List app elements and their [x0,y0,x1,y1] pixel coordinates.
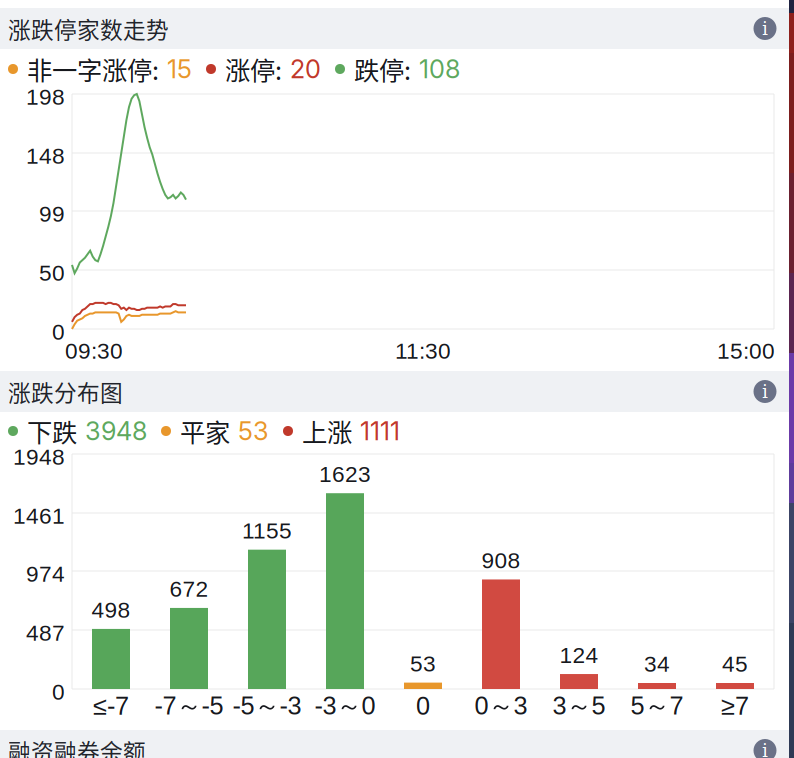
staticText: 0 [416,692,430,720]
staticText: 15 [167,54,192,84]
staticText: 非一字涨停: [27,51,159,87]
staticText: 124 [559,642,598,668]
staticText: 0 [52,679,65,705]
staticText: 908 [481,548,520,573]
button[interactable]: Information [745,371,785,411]
staticText: 0 [52,319,65,345]
staticText: 1623 [319,461,371,487]
staticText: 498 [91,597,130,623]
staticText: 148 [26,143,65,169]
staticText: -3～0 [314,690,375,722]
staticText: 108 [419,54,460,84]
staticText: 0～3 [474,690,527,722]
staticText: 974 [26,561,65,587]
staticText: ≤-7 [93,692,129,720]
staticText: 融资融券余额 [8,734,146,758]
staticText: -5～-3 [232,690,301,722]
staticText: 上涨 [302,413,352,449]
staticText: 53 [410,651,436,676]
button[interactable]: Information [745,730,785,758]
staticText: 45 [722,651,748,677]
staticText: ≥7 [721,692,749,720]
staticText: 198 [26,84,65,110]
staticText: 1948 [13,444,65,470]
staticText: 34 [644,651,670,677]
staticText: 1155 [242,518,292,543]
staticText: 5～7 [630,690,683,722]
staticText: 平家 [180,413,230,449]
button[interactable]: Information [745,8,785,48]
staticText: 3948 [85,416,147,446]
staticText: 99 [39,201,65,227]
staticText: 20 [290,54,321,84]
staticText: 3～5 [552,690,605,722]
staticText: 487 [26,620,65,646]
staticText: 09:30 [65,338,123,364]
staticText: 涨跌分布图 [8,375,123,408]
staticText: i [762,740,768,758]
staticText: 涨跌停家数走势 [8,12,169,45]
staticText: 11:30 [395,338,451,364]
staticText: 15:00 [717,338,775,364]
staticText: 涨停: [225,51,282,87]
staticText: 1111 [360,416,400,446]
staticText: 1461 [13,503,65,529]
staticText: i [762,381,768,402]
staticText: i [762,18,768,39]
staticText: 下跌 [27,413,77,449]
staticText: 53 [238,416,269,446]
staticText: 跌停: [354,51,411,87]
staticText: 672 [169,576,208,602]
staticText: -7～-5 [154,690,223,722]
staticText: 50 [39,260,65,286]
